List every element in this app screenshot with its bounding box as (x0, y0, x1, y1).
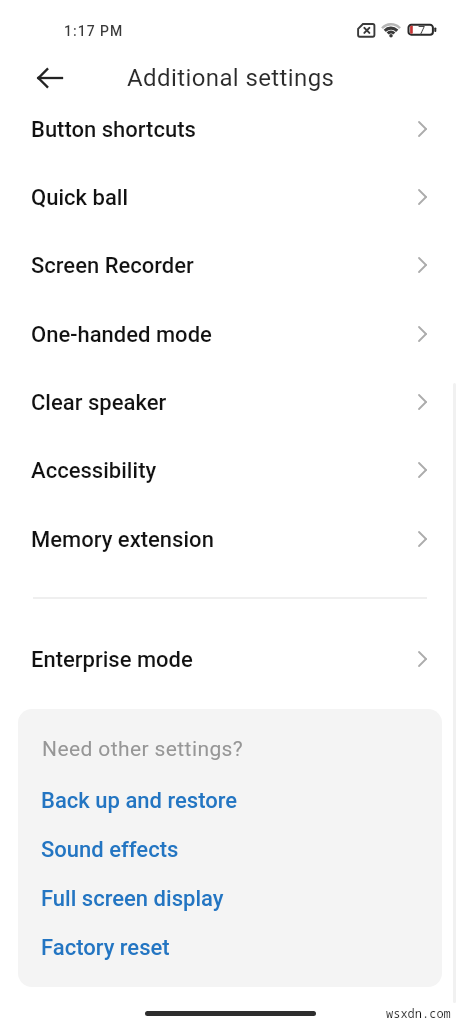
button[interactable]: Memory extension (0, 506, 461, 574)
button[interactable]: Back (26, 55, 74, 101)
button[interactable]: Quick ball (0, 164, 461, 232)
staticText: Memory extension (31, 527, 214, 553)
button[interactable]: Enterprise mode (0, 626, 461, 694)
button[interactable]: Full screen display (18, 874, 442, 923)
staticText: Enterprise mode (31, 647, 193, 673)
button[interactable]: Factory reset (18, 923, 442, 972)
staticText: Screen Recorder (31, 253, 194, 279)
staticText: Factory reset (41, 935, 170, 961)
button[interactable]: Clear speaker (0, 369, 461, 437)
staticText: Sound effects (41, 837, 179, 863)
staticText: Full screen display (41, 886, 224, 912)
staticText: Clear speaker (31, 390, 167, 416)
button[interactable]: Button shortcuts (0, 96, 461, 164)
staticText: Accessibility (31, 458, 157, 484)
button[interactable]: Screen Recorder (0, 232, 461, 300)
staticText: Button shortcuts (31, 117, 196, 143)
staticText: Back up and restore (41, 788, 238, 814)
staticText: 7 (418, 23, 426, 38)
staticText: 1:17 PM (64, 23, 124, 39)
button[interactable]: One-handed mode (0, 301, 461, 369)
staticText: One-handed mode (31, 322, 212, 348)
button[interactable]: Back up and restore (18, 776, 442, 825)
button[interactable]: Sound effects (18, 825, 442, 874)
staticText: wsxdn.com (386, 1005, 451, 1021)
staticText: Quick ball (31, 185, 129, 211)
staticText: Additional settings (127, 64, 335, 92)
staticText: Need other settings? (42, 737, 244, 762)
button[interactable]: Accessibility (0, 437, 461, 505)
